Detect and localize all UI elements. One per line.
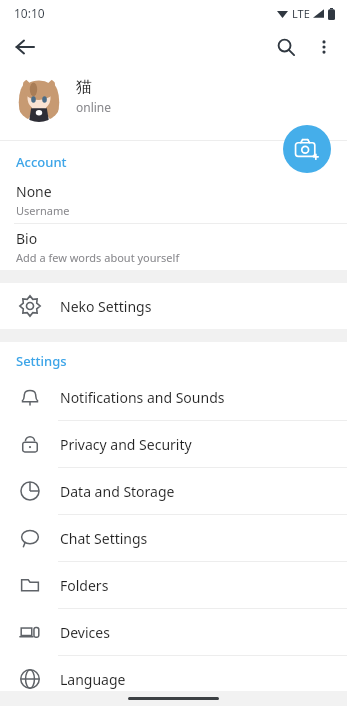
button[interactable]: More options <box>305 28 343 66</box>
staticText: Notifications and Sounds <box>60 388 225 407</box>
staticText: 10:10 <box>14 5 45 21</box>
staticText: None <box>16 182 52 201</box>
button[interactable]: Bio <box>0 224 347 270</box>
button[interactable]: Language <box>0 656 347 702</box>
staticText: Privacy and Security <box>60 435 192 454</box>
staticText: Settings <box>16 352 67 370</box>
button[interactable]: Back <box>6 28 44 66</box>
button[interactable]: Privacy and Security <box>0 421 347 467</box>
button[interactable]: Notifications and Sounds <box>0 374 347 420</box>
button[interactable]: Data and Storage <box>0 468 347 514</box>
button[interactable]: 猫 <box>0 68 347 140</box>
button[interactable]: Neko Settings <box>0 283 347 329</box>
staticText: LTE <box>292 6 310 21</box>
staticText: online <box>76 99 112 115</box>
staticText: Chat Settings <box>60 529 148 548</box>
staticText: Folders <box>60 576 109 595</box>
staticText: Language <box>60 670 126 689</box>
button[interactable]: Folders <box>0 562 347 608</box>
staticText: Account <box>16 153 67 171</box>
staticText: Data and Storage <box>60 482 175 501</box>
staticText: 猫 <box>76 77 92 97</box>
staticText: Neko Settings <box>60 297 152 316</box>
staticText: Bio <box>16 229 38 248</box>
staticText: Add a few words about yourself <box>16 250 180 265</box>
button[interactable]: Set profile photo <box>283 125 331 173</box>
staticText: Devices <box>60 623 110 642</box>
button[interactable]: None <box>0 177 347 223</box>
staticText: Username <box>16 203 70 218</box>
button[interactable]: Chat Settings <box>0 515 347 561</box>
button[interactable]: Devices <box>0 609 347 655</box>
button[interactable]: Search <box>267 28 305 66</box>
